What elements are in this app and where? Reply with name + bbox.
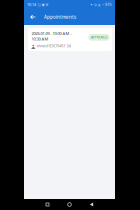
button[interactable]: Recent apps: [36, 199, 58, 210]
staticText: Appointments: [44, 14, 76, 20]
staticText: ◱ ▣ ⊞: [37, 3, 48, 6]
button[interactable]: Back: [80, 199, 102, 210]
button[interactable]: Back: [24, 9, 44, 25]
staticText: 10:30 AM: [31, 36, 48, 42]
button[interactable]: Home: [58, 199, 80, 210]
staticText: APPROVED: [91, 35, 107, 40]
staticText: 2026-01-09 - 10:00 AM -: [31, 31, 71, 36]
staticText: ahmed (E3C76451 3d): [36, 43, 71, 48]
staticText: ✦ ◎ ◭ ⌁ 84%: [90, 2, 112, 7]
staticText: 10:14: [27, 2, 36, 7]
button[interactable]: 2026-01-09 - 10:00 AM -: [28, 28, 112, 51]
